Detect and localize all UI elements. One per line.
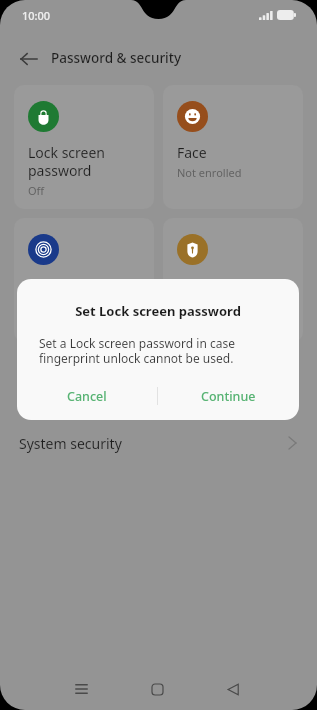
staticText: Fingerprint <box>28 276 102 295</box>
button[interactable]: System security <box>0 420 317 466</box>
staticText: Privacy <box>177 276 224 295</box>
button[interactable]: Home <box>136 668 179 710</box>
staticText: Continue <box>201 388 256 405</box>
button[interactable]: Fingerprint <box>14 218 154 342</box>
staticText: Set Lock screen password <box>17 302 299 320</box>
staticText: Set a Lock screen password in case finge… <box>39 335 235 366</box>
staticText: 10:00 <box>22 8 51 23</box>
staticText: None added <box>28 298 92 313</box>
button[interactable]: Face <box>163 85 303 209</box>
button[interactable]: Back <box>211 668 254 710</box>
staticText: Off <box>28 183 45 198</box>
staticText: System security <box>19 434 122 453</box>
staticText: Lock screen password <box>28 143 106 180</box>
button[interactable]: Cancel <box>17 382 157 410</box>
button[interactable]: Continue <box>158 382 299 410</box>
staticText: Face <box>177 143 207 162</box>
staticText: Cancel <box>67 388 107 405</box>
button[interactable]: Lock screen password <box>14 85 154 209</box>
staticText: Not enrolled <box>177 165 242 180</box>
button[interactable]: Recent apps <box>60 668 103 710</box>
staticText: Password & security <box>51 49 182 67</box>
button[interactable]: Privacy <box>163 218 303 342</box>
button[interactable]: Back <box>6 37 50 81</box>
